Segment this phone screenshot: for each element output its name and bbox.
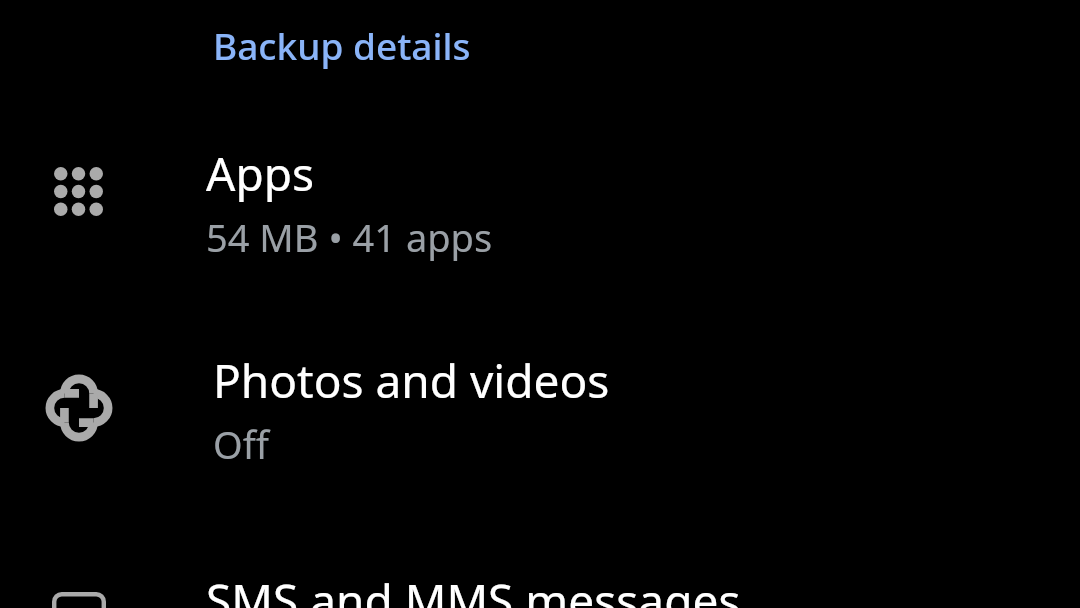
staticText: Off (213, 418, 269, 470)
button[interactable]: SMS and MMS messages (0, 548, 1080, 608)
other: SMS and MMS messages (52, 592, 106, 608)
staticText: 54 MB • 41 apps (206, 211, 493, 263)
button[interactable]: Photos and videos (0, 324, 1080, 476)
staticText: SMS and MMS messages (206, 569, 741, 608)
button[interactable]: Apps (0, 120, 1080, 272)
button[interactable]: Backup details (213, 20, 471, 70)
staticText: Photos and videos (213, 349, 610, 412)
staticText: Apps (206, 142, 315, 205)
staticText: Backup details (213, 20, 471, 70)
other: Apps (54, 167, 104, 217)
other: Photos and videos (48, 377, 110, 439)
